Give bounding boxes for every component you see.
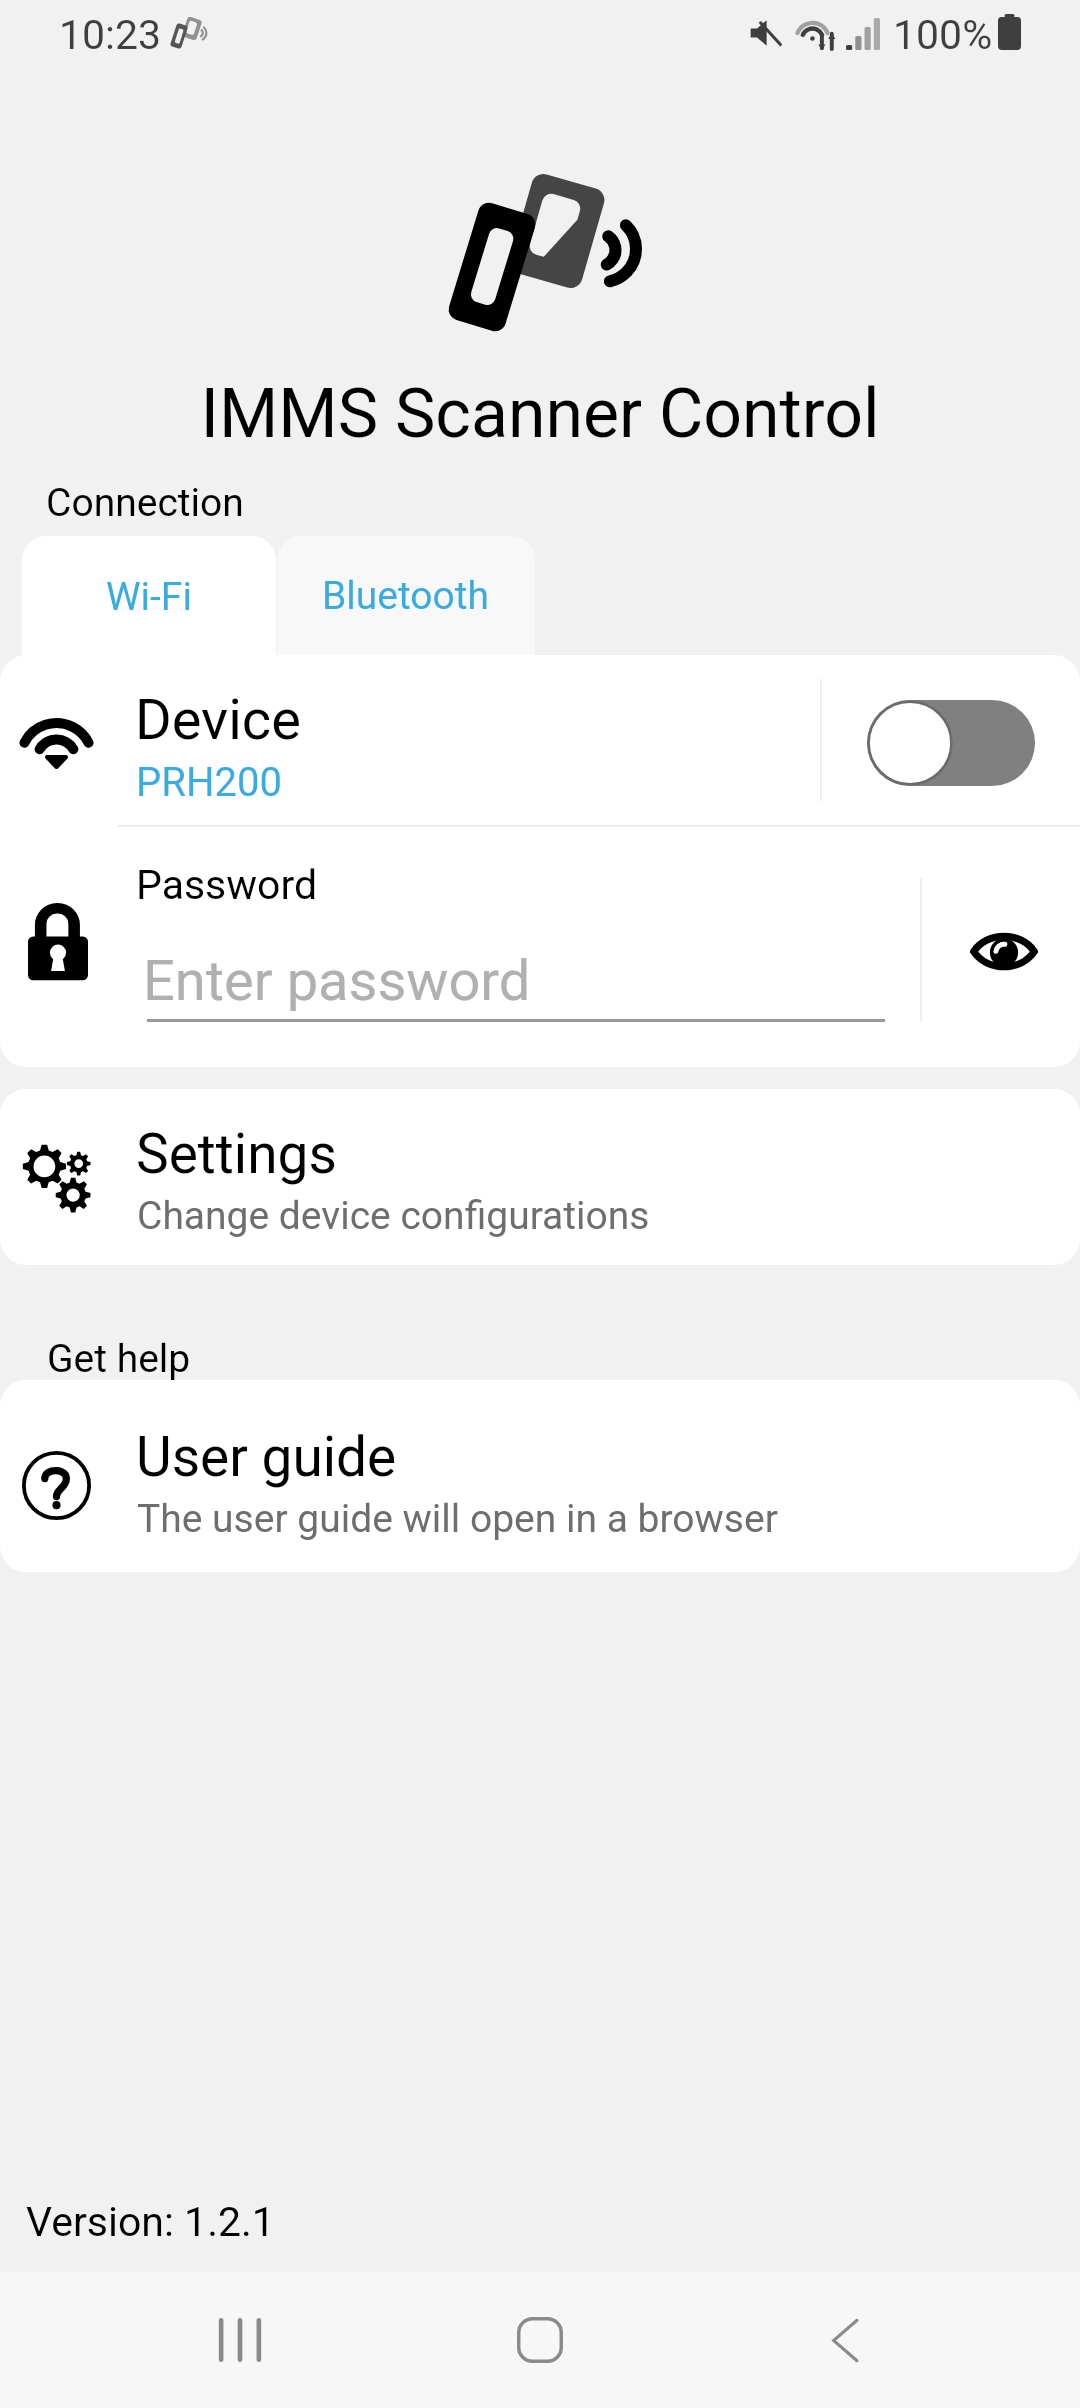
- button[interactable]: Device connection toggle: [867, 700, 1035, 786]
- button[interactable]: Bluetooth: [277, 536, 535, 655]
- button[interactable]: Home: [450, 2272, 630, 2408]
- staticText: Bluetooth: [322, 573, 490, 619]
- staticText: User guide: [136, 1425, 397, 1489]
- staticText: PRH200: [136, 759, 282, 806]
- button[interactable]: Back: [755, 2272, 935, 2408]
- button[interactable]: [0, 1089, 1080, 1265]
- staticText: Password: [136, 861, 318, 909]
- staticText: Connection: [46, 480, 244, 526]
- button[interactable]: Show password: [950, 920, 1058, 982]
- staticText: 100%: [893, 11, 993, 59]
- staticText: Change device configurations: [137, 1193, 650, 1239]
- staticText: Enter password: [143, 948, 531, 1014]
- staticText: IMMS Scanner Control: [0, 374, 1080, 454]
- staticText: Settings: [136, 1122, 337, 1186]
- staticText: Get help: [47, 1336, 191, 1382]
- staticText: Wi-Fi: [106, 574, 192, 620]
- button[interactable]: Recent apps: [150, 2272, 330, 2408]
- staticText: Device: [135, 687, 301, 753]
- staticText: The user guide will open in a browser: [137, 1496, 778, 1542]
- button[interactable]: [0, 655, 820, 825]
- button[interactable]: [0, 1380, 1080, 1572]
- button[interactable]: Password field: [118, 930, 888, 1026]
- staticText: Version: 1.2.1: [26, 2198, 275, 2246]
- button[interactable]: Wi-Fi: [22, 536, 276, 658]
- staticText: 10:23: [59, 11, 162, 59]
